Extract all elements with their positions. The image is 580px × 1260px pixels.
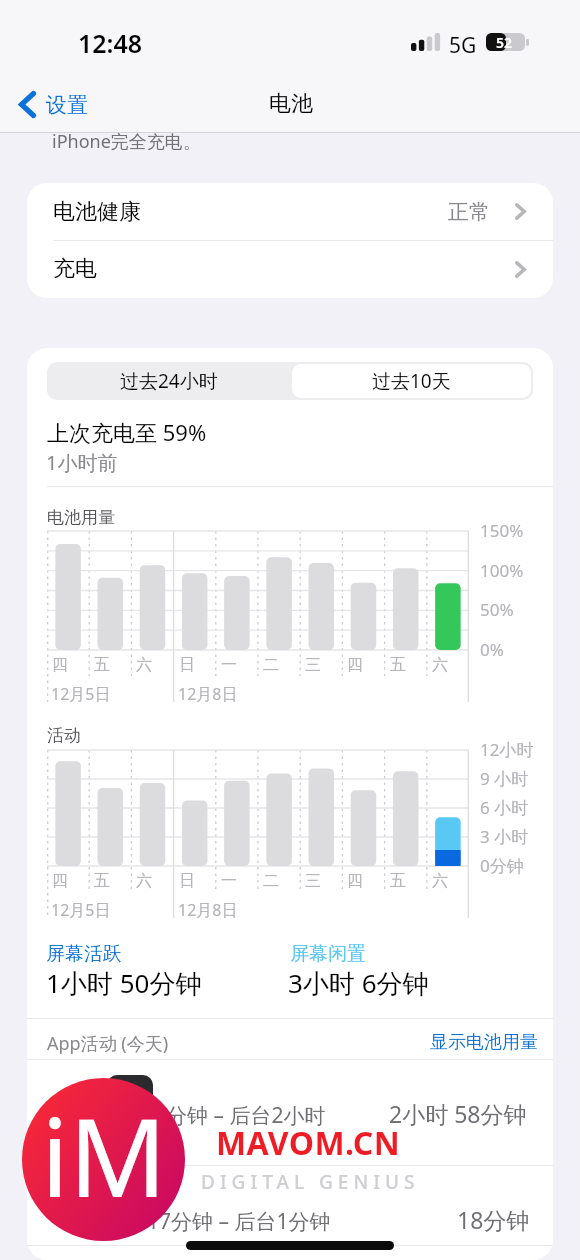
staticText: 12月8日 [178,683,238,705]
staticText: 四 [347,871,363,891]
staticText: 12月5日 [51,683,111,705]
staticText: 正常 [448,199,490,225]
staticText: 二 [263,655,279,675]
staticText: DIGITAL GENIUS [201,1169,420,1195]
staticText: 日 [179,871,195,891]
button[interactable]: 过去24小时 [47,362,290,400]
staticText: 过去10天 [372,368,451,394]
staticText: 3小时 6分钟 [288,965,429,1001]
staticText: 五 [94,655,110,675]
staticText: 50% [480,598,514,621]
staticText: 设置 [46,92,88,118]
button[interactable]: 过去10天 [290,362,533,400]
staticText: 三 [305,871,321,891]
staticText: 5G [449,31,477,60]
staticText: 100% [480,559,524,582]
button[interactable]: 7分钟 – 后台2小时 [27,1059,553,1165]
staticText: 0分钟 [480,854,524,877]
staticText: 18分钟 [457,1204,530,1235]
staticText: 活动 [47,725,81,746]
button[interactable]: 返回设置 [15,86,92,123]
staticText: 12月5日 [51,899,111,921]
staticText: iPhone完全充电。 [52,129,201,154]
staticText: 17分钟 – 后台1分钟 [147,1207,331,1236]
staticText: iM [41,1082,167,1229]
staticText: 7分钟 – 后台2小时 [154,1101,326,1130]
staticText: 过去24小时 [120,368,218,394]
staticText: 显示电池用量 [430,1031,538,1054]
staticText: 五 [390,871,406,891]
button[interactable]: 电池健康 [27,183,553,240]
staticText: 屏幕闲置 [290,942,366,966]
staticText: 五 [390,655,406,675]
staticText: 电池用量 [47,507,115,528]
button[interactable]: 17分钟 – 后台1分钟 [27,1165,553,1260]
staticText: 上次充电至 59% [47,417,207,447]
staticText: 150% [480,519,524,542]
staticText: 电池 [269,90,313,118]
staticText: 六 [432,871,448,891]
button[interactable]: 充电 [27,240,553,298]
staticText: 52 [496,33,513,51]
staticText: 12月8日 [178,899,238,921]
staticText: MAVOM.CN [216,1121,401,1165]
staticText: App活动 (今天) [47,1031,169,1056]
staticText: 12:48 [78,26,143,60]
staticText: 六 [432,655,448,675]
staticText: 1小时前 [46,449,118,476]
staticText: 四 [52,655,68,675]
staticText: 屏幕活跃 [46,942,122,966]
staticText: 五 [94,871,110,891]
staticText: 一 [221,871,237,891]
staticText: 3 小时 [480,825,529,848]
staticText: 一 [221,655,237,675]
staticText: 电池健康 [53,198,141,226]
staticText: 1小时 50分钟 [46,965,202,1001]
staticText: 充电 [53,255,97,283]
staticText: 6 小时 [480,796,529,819]
button[interactable]: 显示电池用量 [424,1025,544,1060]
staticText: 六 [136,655,152,675]
staticText: 0% [480,638,504,661]
staticText: 9 小时 [480,767,529,790]
staticText: 四 [347,655,363,675]
staticText: 三 [305,655,321,675]
staticText: 二 [263,871,279,891]
staticText: 四 [52,871,68,891]
staticText: 12小时 [480,738,534,761]
staticText: 六 [136,871,152,891]
staticText: 2小时 58分钟 [389,1098,527,1129]
staticText: 日 [179,655,195,675]
